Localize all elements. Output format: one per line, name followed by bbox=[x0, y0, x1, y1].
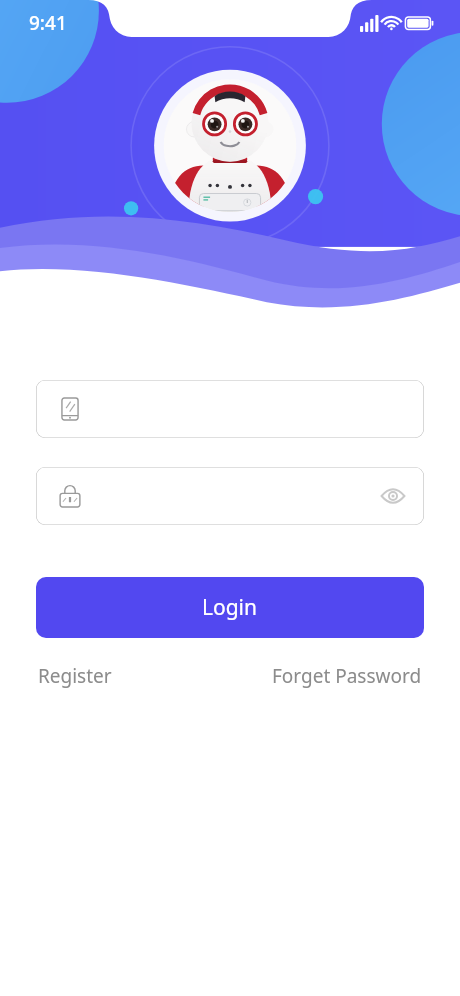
button[interactable]: Forget Password bbox=[270, 657, 424, 695]
button[interactable] bbox=[36, 380, 424, 438]
staticText: Login bbox=[202, 593, 258, 622]
staticText: Register bbox=[38, 663, 112, 689]
button[interactable]: Login bbox=[36, 577, 424, 638]
button[interactable]: Register bbox=[36, 657, 114, 695]
staticText: 9:41 bbox=[29, 10, 67, 36]
staticText: Forget Password bbox=[272, 663, 422, 689]
button[interactable]: Show password bbox=[36, 467, 424, 525]
button[interactable]: Show password bbox=[380, 483, 406, 509]
